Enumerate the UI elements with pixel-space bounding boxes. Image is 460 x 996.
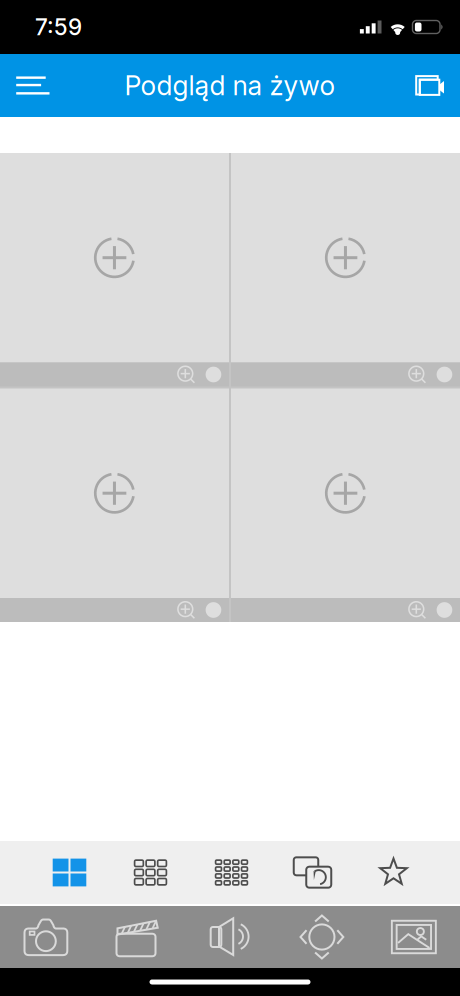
button[interactable]: Zoom in <box>177 601 195 619</box>
button[interactable]: 4 by 4 layout <box>191 841 272 904</box>
button[interactable]: 3 by 3 layout <box>110 841 191 904</box>
button[interactable]: Zoom in <box>177 365 195 384</box>
button[interactable]: Gallery <box>368 906 460 968</box>
button[interactable]: Camera options <box>437 367 452 382</box>
button[interactable]: Snapshot <box>0 906 92 968</box>
button[interactable]: Zoom in <box>408 601 426 619</box>
staticText: Podgląd na żywo <box>124 69 335 102</box>
button[interactable]: Favourites <box>353 841 434 904</box>
button[interactable]: Camera options <box>206 367 221 382</box>
button[interactable]: Camera options <box>437 602 452 618</box>
button[interactable]: Add camera <box>394 54 460 117</box>
button[interactable]: Audio <box>184 906 276 968</box>
staticText: 7:59 <box>35 13 82 41</box>
button[interactable]: Zoom in <box>408 365 426 384</box>
button[interactable]: Rotate view <box>272 841 353 904</box>
button[interactable]: Camera options <box>206 602 221 618</box>
button[interactable]: Record video <box>92 906 184 968</box>
button[interactable]: Menu <box>0 54 62 117</box>
button[interactable]: Pan tilt zoom <box>276 906 368 968</box>
button[interactable]: 2 by 2 layout <box>29 841 110 904</box>
